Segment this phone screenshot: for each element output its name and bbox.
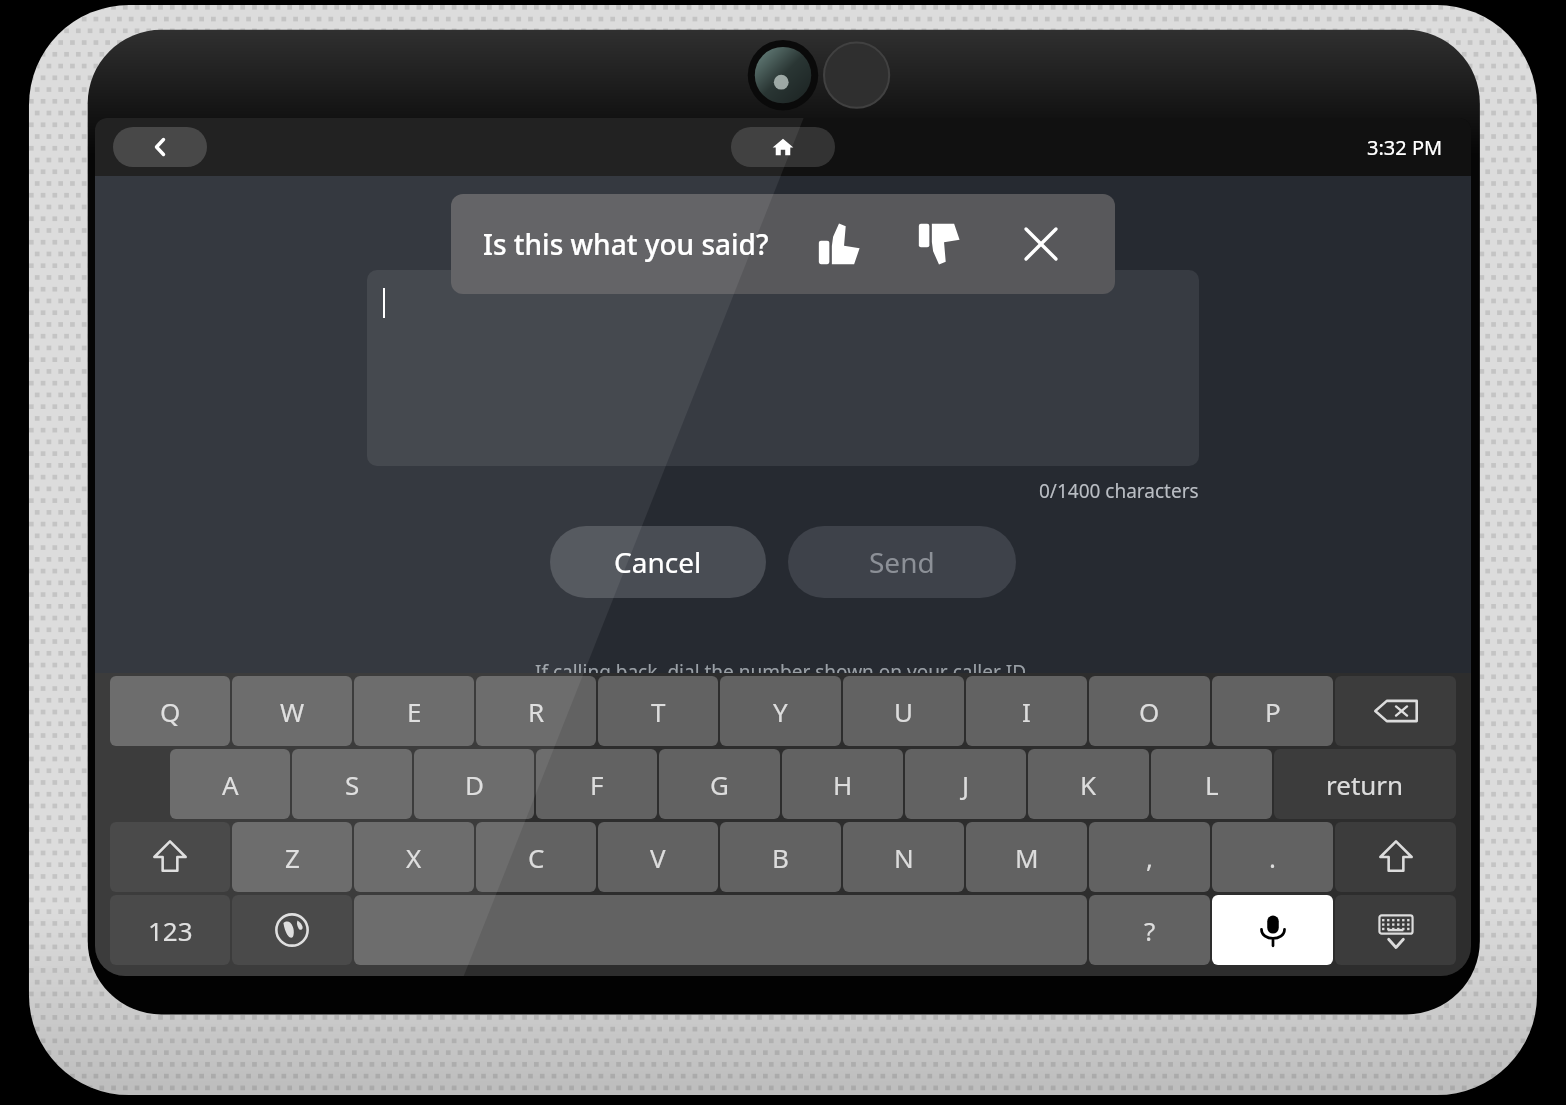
staticText: R — [528, 694, 545, 729]
staticText: Is this what you said? — [483, 225, 769, 263]
button[interactable]: W — [232, 676, 352, 746]
button[interactable]: ? — [1089, 895, 1210, 965]
staticText: S — [345, 767, 360, 802]
staticText: ? — [1144, 913, 1156, 948]
staticText: If calling back, dial the number shown o… — [535, 659, 1031, 685]
button[interactable]: No — [911, 216, 967, 272]
button[interactable] — [367, 270, 1199, 466]
staticText: Z — [285, 840, 300, 875]
staticText: X — [406, 840, 422, 875]
button[interactable]: 123 — [110, 895, 230, 965]
button[interactable]: Back — [113, 127, 207, 167]
button[interactable]: P — [1212, 676, 1333, 746]
button[interactable]: G — [659, 749, 780, 819]
staticText: Q — [160, 694, 181, 729]
button[interactable]: Shift — [110, 822, 230, 892]
button[interactable]: Home — [731, 127, 835, 167]
button[interactable]: I — [966, 676, 1087, 746]
button[interactable]: Cancel — [550, 526, 766, 598]
staticText: N — [894, 840, 914, 875]
button[interactable]: Q — [110, 676, 230, 746]
button[interactable]: R — [476, 676, 596, 746]
button[interactable]: Hide keyboard — [1335, 895, 1456, 965]
button[interactable]: F — [536, 749, 657, 819]
staticText: 0/1400 characters — [1039, 478, 1199, 504]
button[interactable]: B — [720, 822, 841, 892]
button[interactable]: . — [1212, 822, 1333, 892]
staticText: O — [1139, 694, 1160, 729]
staticText: F — [590, 767, 604, 802]
staticText: A — [222, 767, 239, 802]
button[interactable]: O — [1089, 676, 1210, 746]
staticText: . — [1269, 840, 1276, 875]
button[interactable]: return — [1274, 749, 1456, 819]
staticText: I — [1022, 694, 1031, 729]
button[interactable]: Y — [720, 676, 841, 746]
staticText: E — [407, 694, 422, 729]
staticText: M — [1015, 840, 1039, 875]
staticText: , — [1146, 840, 1153, 875]
button[interactable]: Z — [232, 822, 352, 892]
staticText: P — [1265, 694, 1281, 729]
staticText: J — [962, 767, 970, 802]
button[interactable]: K — [1028, 749, 1149, 819]
staticText: 123 — [148, 913, 193, 948]
staticText: U — [894, 694, 914, 729]
button[interactable]: Backspace — [1335, 676, 1456, 746]
staticText: G — [710, 767, 729, 802]
button[interactable]: V — [598, 822, 718, 892]
staticText: Cancel — [614, 543, 702, 581]
staticText: return — [1326, 767, 1404, 802]
button[interactable]: , — [1089, 822, 1210, 892]
button[interactable]: Yes — [811, 216, 867, 272]
staticText: L — [1205, 767, 1219, 802]
button[interactable]: H — [782, 749, 903, 819]
staticText: K — [1080, 767, 1097, 802]
button[interactable]: Shift — [1335, 822, 1456, 892]
button[interactable]: Change language — [232, 895, 352, 965]
button[interactable]: X — [354, 822, 474, 892]
button[interactable]: L — [1151, 749, 1272, 819]
staticText: H — [833, 767, 853, 802]
staticText: Use the keyboard below to type your mess… — [507, 223, 1060, 250]
button[interactable]: Voice input — [1212, 895, 1333, 965]
staticText: D — [465, 767, 484, 802]
button[interactable]: Send — [788, 526, 1016, 598]
button[interactable]: T — [598, 676, 718, 746]
button[interactable]: E — [354, 676, 474, 746]
button[interactable]: N — [843, 822, 964, 892]
staticText: C — [528, 840, 545, 875]
button[interactable] — [354, 895, 1087, 965]
button[interactable]: U — [843, 676, 964, 746]
button[interactable]: D — [414, 749, 534, 819]
button[interactable]: S — [292, 749, 412, 819]
button[interactable]: A — [170, 749, 290, 819]
button[interactable]: J — [905, 749, 1026, 819]
staticText: W — [280, 694, 305, 729]
staticText: Y — [773, 694, 788, 729]
staticText: V — [650, 840, 666, 875]
staticText: B — [772, 840, 789, 875]
staticText: 3:32 PM — [1367, 134, 1443, 161]
button[interactable]: Close — [1015, 218, 1067, 270]
staticText: T — [651, 694, 666, 729]
button[interactable]: M — [966, 822, 1087, 892]
staticText: Send — [869, 543, 935, 581]
button[interactable]: C — [476, 822, 596, 892]
